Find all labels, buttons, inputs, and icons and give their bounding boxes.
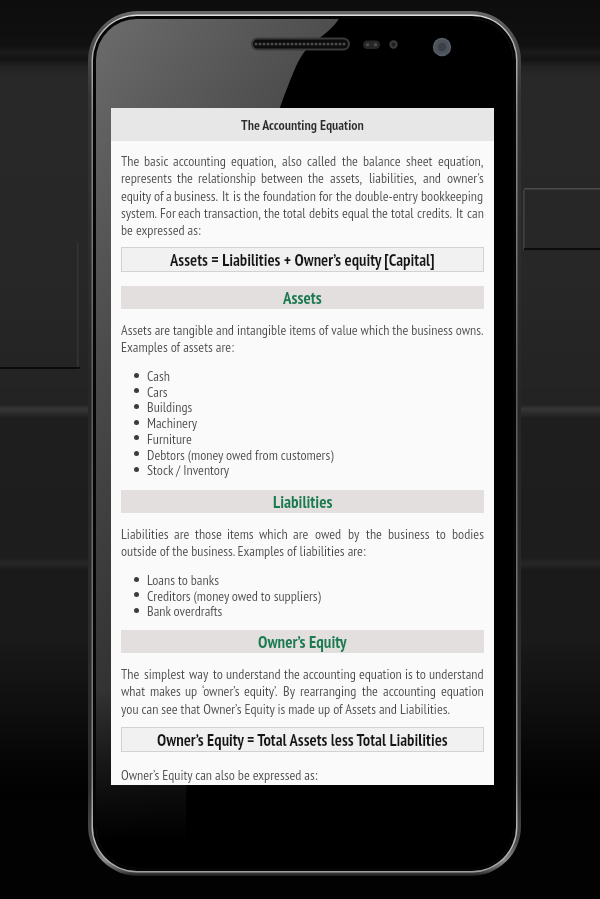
staticText: the (177, 169, 193, 187)
staticText: the (308, 169, 324, 187)
staticText: what (121, 682, 146, 700)
staticText: Furniture (147, 430, 192, 448)
staticText: ‘owner’s (202, 682, 240, 700)
staticText: each (178, 204, 201, 222)
staticText: total (283, 204, 306, 222)
staticText: the (366, 525, 382, 543)
button[interactable]: Liabilities (121, 490, 484, 513)
staticText: represents (121, 169, 172, 187)
staticText: simplest (144, 665, 185, 683)
staticText: to (436, 525, 446, 543)
staticText: understand (429, 665, 484, 683)
staticText: between (261, 169, 303, 187)
button[interactable]: The Accounting Equation (111, 108, 494, 141)
staticText: Cash (147, 367, 170, 385)
staticText: are (174, 525, 190, 543)
staticText: owed (315, 525, 342, 543)
staticText: Bank overdrafts (147, 602, 223, 620)
staticText: accounting (383, 682, 436, 700)
staticText: Debtors (money owed from customers) (147, 446, 334, 464)
staticText: Stock / Inventory (147, 461, 230, 479)
staticText: up (185, 682, 198, 700)
staticText: It (456, 204, 464, 222)
staticText: you can see that Owner’s Equity is made … (121, 700, 484, 718)
staticText: Buildings (147, 398, 193, 416)
staticText: called (307, 152, 337, 170)
staticText: The Accounting Equation (241, 116, 364, 134)
button[interactable]: Owner’s Equity (121, 630, 484, 653)
staticText: Creditors (money owed to suppliers) (147, 587, 321, 605)
staticText: can (467, 204, 484, 222)
staticText: liabilities, (369, 169, 417, 187)
staticText: the (244, 187, 260, 205)
staticText: By (283, 682, 295, 700)
staticText: which (259, 525, 288, 543)
staticText: equal (342, 204, 369, 222)
staticText: double-entry (355, 187, 418, 205)
staticText: makes (150, 682, 181, 700)
staticText: It (222, 187, 230, 205)
staticText: to (416, 665, 426, 683)
staticText: assets, (330, 169, 363, 187)
staticText: equation (359, 665, 402, 683)
staticText: business. (174, 187, 219, 205)
staticText: The (121, 665, 140, 683)
staticText: The (121, 152, 140, 170)
staticText: equity (121, 187, 152, 205)
staticText: bodies (452, 525, 484, 543)
staticText: equation (441, 682, 484, 700)
staticText: total (391, 204, 414, 222)
staticText: by (348, 525, 360, 543)
staticText: is (233, 187, 241, 205)
staticText: debits (309, 204, 339, 222)
staticText: relationship (198, 169, 256, 187)
staticText: balance (363, 152, 401, 170)
staticText: the (372, 204, 388, 222)
staticText: for (319, 187, 333, 205)
button[interactable]: Owner’s Equity = Total Assets less Total… (121, 727, 484, 752)
staticText: Owner’s Equity can also be expressed as: (121, 766, 484, 784)
staticText: the (336, 187, 352, 205)
staticText: Liabilities (273, 491, 333, 513)
staticText: bookkeeping (421, 187, 484, 205)
staticText: equation, (438, 152, 484, 170)
staticText: understand (226, 665, 281, 683)
button[interactable]: Assets (121, 286, 484, 309)
staticText: to (213, 665, 223, 683)
staticText: sheet (406, 152, 433, 170)
staticText: business (388, 525, 430, 543)
staticText: Assets (283, 287, 322, 309)
staticText: is (405, 665, 413, 683)
staticText: rearranging (300, 682, 357, 700)
staticText: the (342, 152, 358, 170)
staticText: basic (144, 152, 169, 170)
staticText: equation, (231, 152, 277, 170)
staticText: foundation (263, 187, 316, 205)
staticText: of (154, 187, 164, 205)
staticText: a (166, 187, 172, 205)
staticText: For (160, 204, 176, 222)
staticText: Cars (147, 383, 168, 401)
staticText: Owner’s Equity (258, 631, 347, 653)
staticText: equity’. (244, 682, 278, 700)
staticText: transaction, (204, 204, 261, 222)
staticText: the (264, 204, 280, 222)
staticText: also (282, 152, 302, 170)
staticText: Owner’s Equity = Total Assets less Total… (157, 729, 448, 751)
staticText: items (227, 525, 254, 543)
staticText: system. (121, 204, 158, 222)
staticText: accounting (173, 152, 226, 170)
staticText: are (293, 525, 309, 543)
staticText: the (284, 665, 300, 683)
staticText: those (195, 525, 222, 543)
staticText: owner's (447, 169, 484, 187)
button[interactable]: Assets = Liabilities + Owner’s equity [C… (121, 247, 484, 272)
staticText: Machinery (147, 414, 198, 432)
staticText: be expressed as: (121, 221, 484, 239)
staticText: Liabilities (121, 525, 169, 543)
staticText: Assets = Liabilities + Owner’s equity [C… (170, 249, 435, 271)
staticText: Assets are tangible and intangible items… (121, 321, 484, 339)
staticText: credits. (417, 204, 453, 222)
staticText: accounting (303, 665, 356, 683)
staticText: the (362, 682, 378, 700)
